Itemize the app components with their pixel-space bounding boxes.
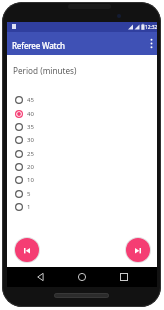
staticText: 40: [27, 110, 34, 118]
staticText: 10: [27, 176, 34, 184]
button[interactable]: [15, 238, 39, 262]
button[interactable]: 20: [15, 160, 57, 173]
button[interactable]: 45: [15, 93, 57, 106]
button[interactable]: [7, 267, 57, 287]
staticText: 25: [27, 150, 34, 158]
button[interactable]: 40: [15, 107, 57, 120]
staticText: Referee Watch: [12, 40, 65, 51]
button[interactable]: 1: [15, 200, 57, 213]
button[interactable]: [126, 238, 150, 262]
button[interactable]: 25: [15, 147, 57, 160]
button[interactable]: [107, 267, 157, 287]
staticText: 20: [27, 163, 34, 171]
staticText: 35: [27, 123, 34, 131]
button[interactable]: 5: [15, 187, 57, 200]
staticText: 30: [27, 136, 34, 144]
button[interactable]: 10: [15, 173, 57, 186]
button[interactable]: 35: [15, 120, 57, 133]
staticText: 45: [27, 96, 34, 104]
button[interactable]: 30: [15, 133, 57, 146]
button[interactable]: Referee Watch: [7, 32, 157, 55]
staticText: Period (minutes): [13, 65, 77, 76]
staticText: 5: [27, 190, 31, 198]
staticText: 1: [27, 203, 31, 211]
staticText: 12:32: [145, 24, 158, 31]
button[interactable]: [57, 267, 107, 287]
